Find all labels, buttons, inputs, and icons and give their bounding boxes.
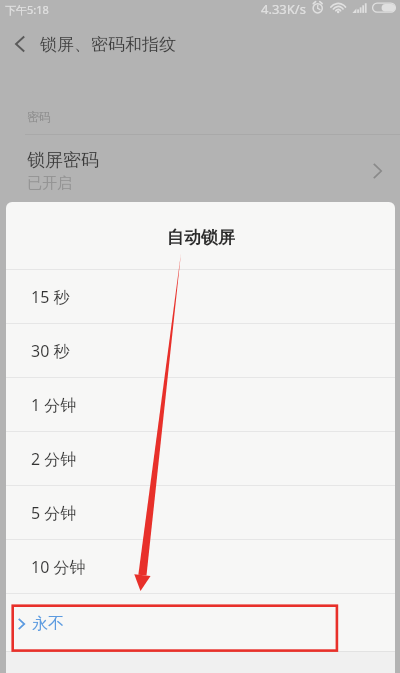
staticText: 10 分钟: [31, 556, 86, 578]
staticText: 5 分钟: [31, 502, 77, 524]
button[interactable]: 5 分钟: [6, 486, 395, 539]
staticText: 30 秒: [31, 340, 70, 362]
staticText: 2 分钟: [31, 448, 77, 470]
staticText: 4.33K/s: [261, 0, 306, 18]
staticText: 1 分钟: [31, 394, 77, 416]
staticText: 自动锁屏: [167, 227, 235, 248]
staticText: 锁屏密码: [27, 149, 99, 172]
staticText: 锁屏、密码和指纹: [40, 34, 176, 55]
staticText: 永不: [32, 614, 64, 634]
staticText: 15 秒: [31, 286, 70, 308]
staticText: 密码: [27, 109, 51, 124]
staticText: 已开启: [27, 174, 72, 193]
staticText: 下午5:18: [5, 2, 49, 17]
button[interactable]: 2 分钟: [6, 432, 395, 485]
button[interactable]: 永不: [6, 594, 395, 651]
button[interactable]: 10 分钟: [6, 540, 395, 593]
button[interactable]: 15 秒: [6, 270, 395, 323]
button[interactable]: 锁屏密码: [0, 139, 400, 203]
button[interactable]: 1 分钟: [6, 378, 395, 431]
button[interactable]: 30 秒: [6, 324, 395, 377]
button[interactable]: Back: [0, 24, 40, 64]
